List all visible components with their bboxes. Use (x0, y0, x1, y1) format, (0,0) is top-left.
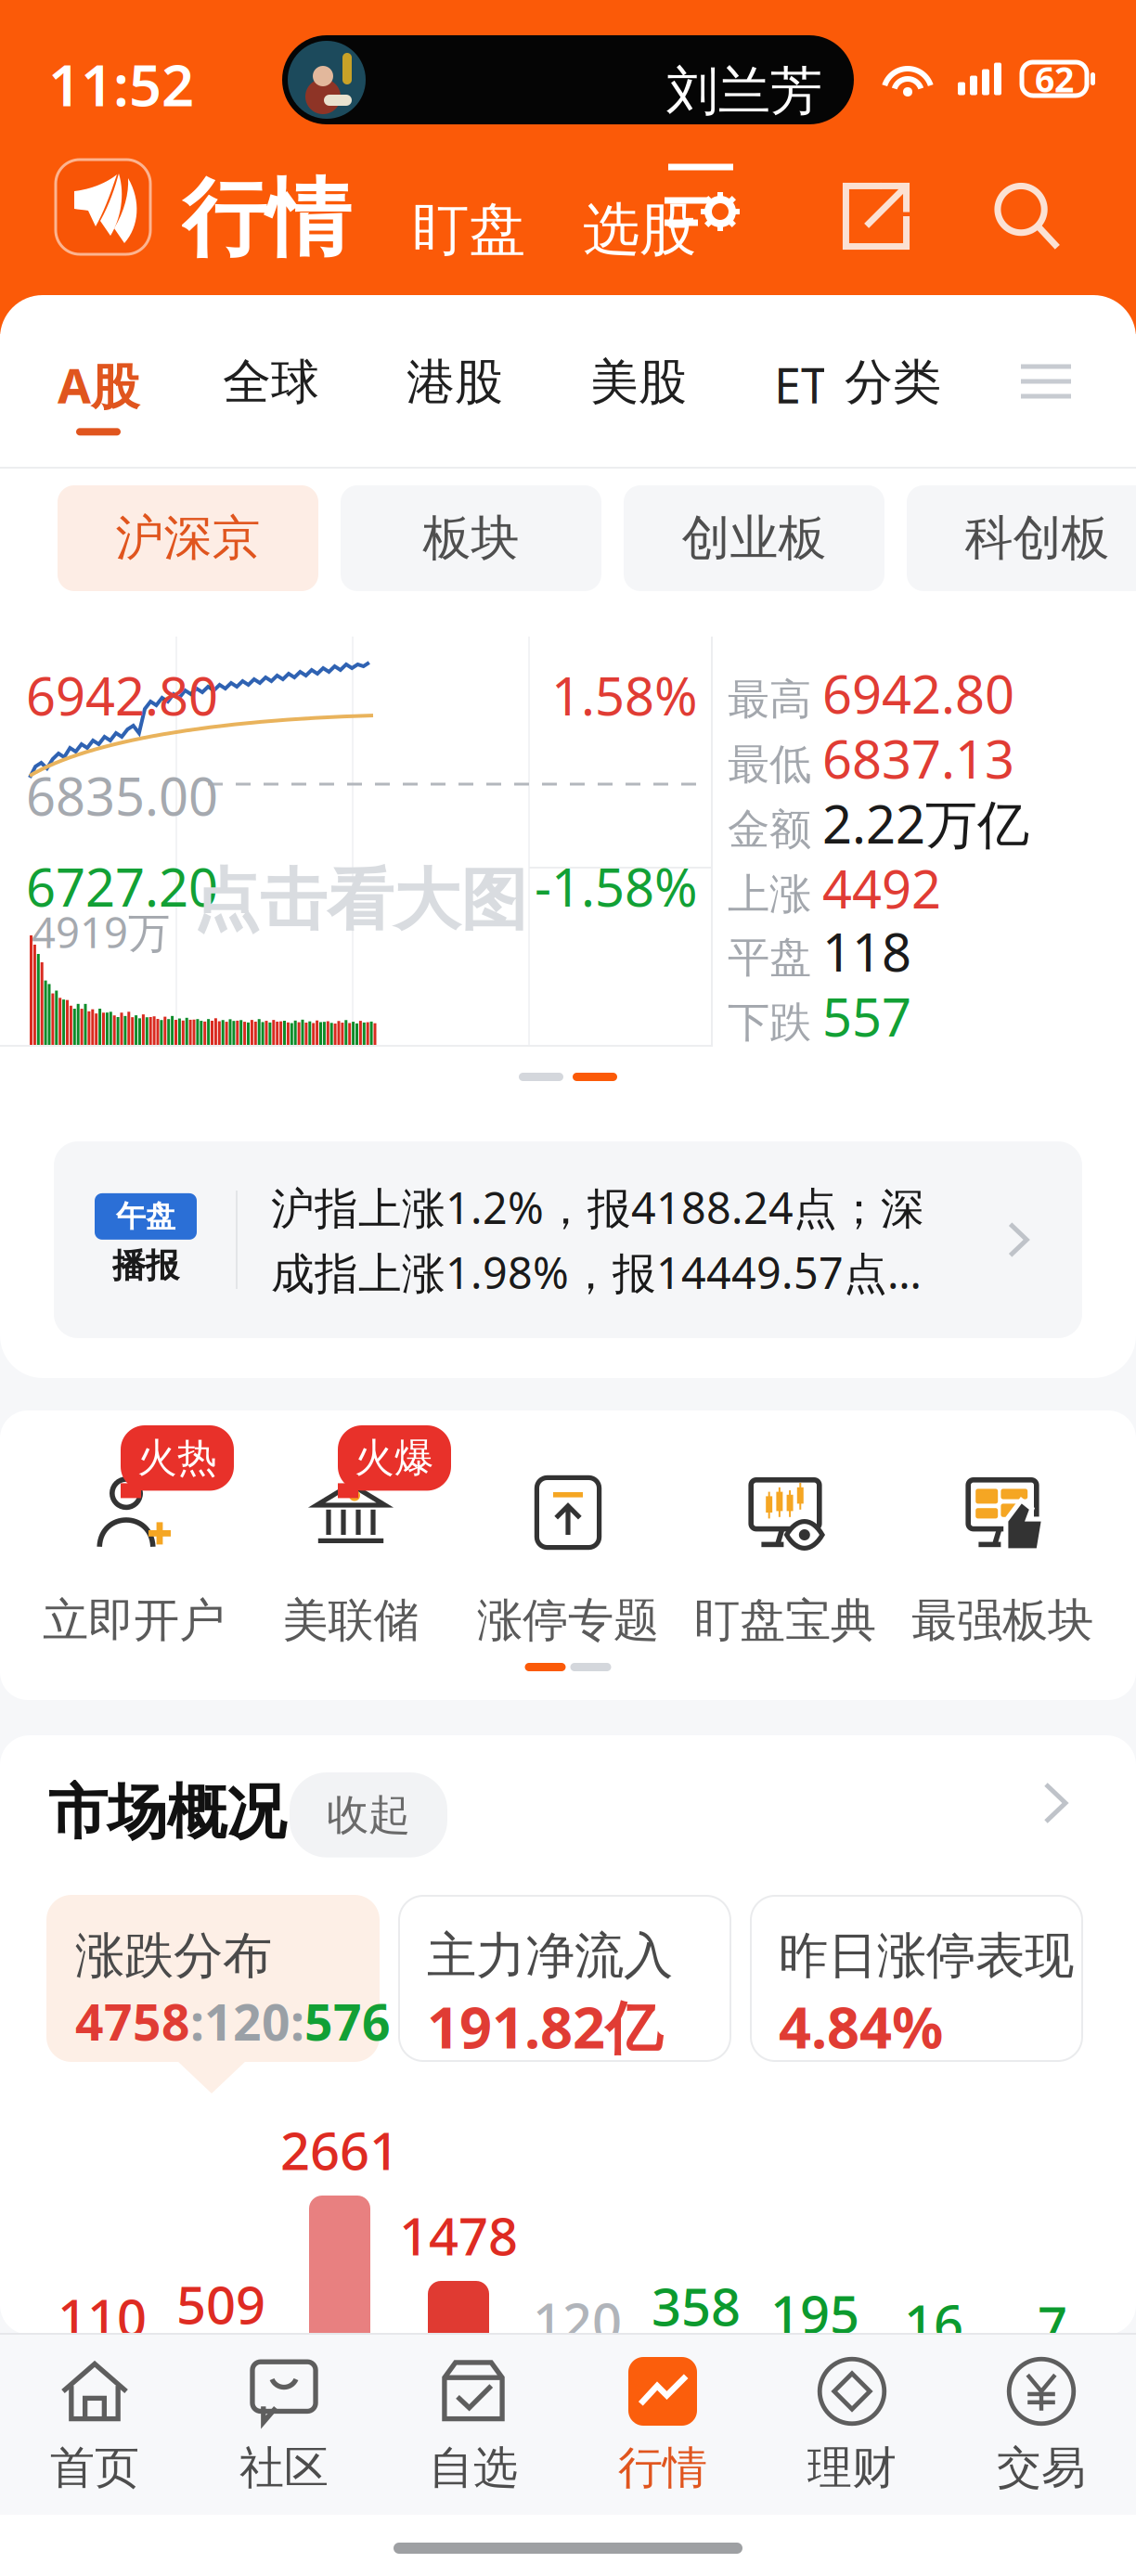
button[interactable]: 全球 (223, 353, 319, 412)
button[interactable]: 板块 (341, 485, 601, 591)
staticText: 火热 (137, 1434, 217, 1482)
button[interactable]: 盯盘宝典 (674, 1410, 897, 1642)
staticText: 557 (822, 982, 911, 1051)
staticText: 涨停专题 (477, 1592, 659, 1649)
button[interactable]: 理财 (757, 2357, 947, 2495)
button[interactable]: 交易 (947, 2357, 1136, 2495)
staticText: 社区 (239, 2441, 329, 2495)
button[interactable]: 沪深京 (58, 485, 318, 591)
staticText: 收起 (327, 1789, 410, 1841)
staticText: 110 (58, 2282, 147, 2351)
staticText: 4758 (75, 1989, 190, 2054)
staticText: 6727.20 (26, 852, 218, 921)
staticText: 62 (1035, 56, 1074, 102)
staticText: 509 (176, 2269, 265, 2338)
staticText: 6835.00 (26, 761, 218, 830)
staticText: 6942.80 (26, 661, 218, 730)
button[interactable]: 创业板 (624, 485, 884, 591)
staticText: 板块 (423, 509, 519, 568)
staticText: 刘兰芳 (666, 59, 822, 123)
staticText: 美联储 (283, 1592, 419, 1649)
staticText: 191.82亿 (427, 1989, 662, 2064)
staticText: 主力净流入 (427, 1926, 673, 1986)
staticText: 11:52 (48, 46, 194, 122)
staticText: 点击看大图 (193, 859, 527, 941)
staticText: 118 (822, 917, 911, 986)
staticText: :120: (190, 1989, 304, 2054)
staticText: 4.84% (779, 1989, 943, 2064)
staticText: 最强板块 (911, 1592, 1093, 1649)
staticText: 昨日涨停表现 (779, 1926, 1074, 1986)
button[interactable]: 午盘 (0, 1141, 1136, 1338)
button[interactable]: 东方财富 (56, 160, 150, 254)
staticText: 2661 (280, 2115, 399, 2184)
staticText: 行情 (618, 2441, 707, 2495)
staticText: 下跌 (728, 997, 811, 1048)
button[interactable]: 收起 (290, 1772, 447, 1857)
staticText: 120 (533, 2286, 622, 2355)
staticText: 最高 (728, 674, 811, 725)
staticText: 沪指上涨1.2%，报4188.24点；深 (271, 1179, 924, 1236)
staticText: 成指上涨1.98%，报14449.57点… (271, 1243, 922, 1301)
button[interactable]: 选股 (574, 184, 705, 276)
button[interactable]: ETF (774, 353, 853, 417)
staticText: 最低 (728, 739, 811, 790)
staticText: 首页 (50, 2441, 139, 2495)
staticText: 美股 (590, 353, 687, 412)
staticText: 交易 (997, 2441, 1086, 2495)
staticText: 平盘 (728, 932, 811, 983)
button[interactable]: 昨日涨停表现 (751, 1896, 1082, 2061)
staticText: 4919万 (32, 904, 170, 960)
button[interactable]: 科创板 (907, 485, 1136, 591)
button[interactable]: A股 (58, 353, 139, 435)
staticText: 科创板 (965, 509, 1110, 568)
staticText: 午盘 (116, 1198, 175, 1235)
staticText: 理财 (807, 2441, 897, 2495)
staticText: 6942.80 (822, 659, 1014, 728)
staticText: 上涨 (728, 869, 811, 920)
staticText: 4492 (822, 854, 941, 923)
button[interactable]: 搜索 (981, 171, 1072, 262)
staticText: 港股 (407, 353, 503, 412)
staticText: -1.58% (535, 852, 698, 921)
staticText: 自选 (429, 2441, 518, 2495)
staticText: 2.22万亿 (822, 789, 1029, 858)
staticText: 沪深京 (116, 509, 260, 568)
button[interactable]: 最强板块 (891, 1410, 1114, 1642)
staticText: 7 (1038, 2290, 1067, 2359)
staticText: 16 (904, 2288, 963, 2357)
staticText: 涨跌分布 (75, 1926, 272, 1986)
staticText: 市场概况 (48, 1776, 286, 1849)
button[interactable]: 更多分类 (1021, 362, 1069, 399)
button[interactable]: 火热 (22, 1410, 245, 1642)
button[interactable]: 行情 (568, 2357, 757, 2495)
button[interactable]: 涨跌分布 (47, 1896, 379, 2061)
staticText: 576 (304, 1989, 391, 2054)
button[interactable]: 火爆 (239, 1410, 462, 1642)
staticText: 立即开户 (43, 1592, 225, 1649)
button[interactable]: 涨停专题 (457, 1410, 679, 1642)
staticText: A股 (58, 353, 139, 417)
staticText: 行情 (182, 167, 351, 270)
button[interactable]: 更多 (1032, 1780, 1078, 1826)
staticText: 选股 (583, 195, 696, 265)
button[interactable]: 分类 (824, 349, 949, 416)
button[interactable]: 港股 (407, 353, 503, 412)
staticText: 盯盘 (412, 195, 525, 265)
staticText: 全球 (223, 353, 319, 412)
button[interactable]: 首页 (0, 2357, 189, 2495)
staticText: 分类 (845, 353, 941, 412)
staticText: 1478 (399, 2201, 518, 2270)
staticText: ETF (774, 353, 853, 417)
staticText: 金额 (728, 804, 811, 855)
button[interactable]: 社区 (189, 2357, 379, 2495)
button[interactable]: 主力净流入 (399, 1896, 730, 2061)
button[interactable]: 美股 (590, 353, 687, 412)
staticText: 创业板 (682, 509, 826, 568)
staticText: 盯盘宝典 (694, 1592, 876, 1649)
staticText: 播报 (112, 1245, 179, 1286)
button[interactable]: 盯盘 (403, 184, 535, 276)
button[interactable]: 分享 (831, 171, 922, 262)
staticText: 195 (770, 2279, 859, 2348)
button[interactable]: 自选 (379, 2357, 568, 2495)
